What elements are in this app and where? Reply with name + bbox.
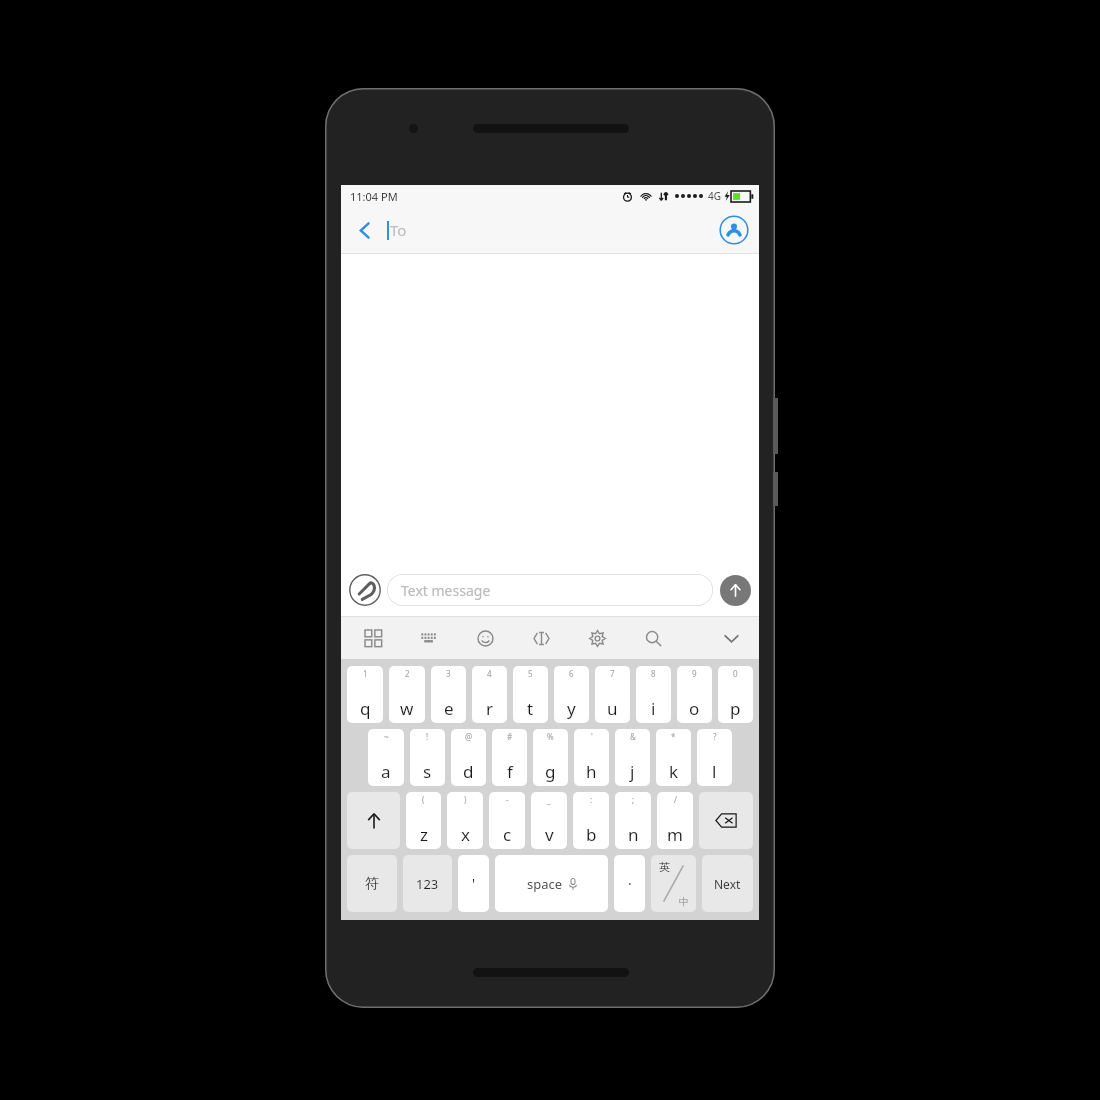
button[interactable]: Shift [347, 792, 400, 849]
button[interactable]: Search [639, 624, 667, 652]
button[interactable]: 2 [389, 666, 425, 723]
staticText: 1 [363, 668, 368, 679]
staticText: m [667, 823, 683, 846]
button[interactable]: Attach [349, 574, 381, 606]
button[interactable]: _ [531, 792, 567, 849]
staticText: 123 [416, 875, 439, 893]
staticText: 4G [708, 189, 721, 203]
button[interactable]: 7 [595, 666, 630, 723]
staticText: g [545, 760, 556, 783]
staticText: : [590, 794, 593, 805]
button[interactable]: 123 [403, 855, 452, 912]
staticText: o [689, 697, 700, 720]
button[interactable]: 6 [554, 666, 589, 723]
staticText: ) [464, 794, 467, 805]
button[interactable]: % [533, 729, 568, 786]
staticText: y [567, 697, 576, 720]
button[interactable]: 9 [677, 666, 712, 723]
button[interactable]: 3 [431, 666, 466, 723]
staticText: @ [465, 731, 473, 742]
staticText: 4 [487, 668, 492, 679]
staticText: q [360, 697, 371, 720]
button[interactable]: · [614, 855, 645, 912]
button[interactable]: ~ [368, 729, 404, 786]
button[interactable]: Next [702, 855, 753, 912]
button[interactable]: space [495, 855, 608, 912]
button[interactable]: 0 [718, 666, 753, 723]
staticText: 3 [446, 668, 451, 679]
button[interactable]: Keyboard layout [415, 624, 443, 652]
button[interactable]: ' [458, 855, 489, 912]
button[interactable]: ) [447, 792, 483, 849]
staticText: l [712, 760, 717, 783]
button[interactable]: & [615, 729, 650, 786]
staticText: space [527, 875, 563, 893]
staticText: ( [422, 794, 425, 805]
button[interactable]: ? [697, 729, 732, 786]
staticText: ' [591, 731, 593, 742]
staticText: 8 [651, 668, 656, 679]
button[interactable]: Settings [583, 624, 611, 652]
staticText: n [628, 823, 639, 846]
button[interactable]: * [656, 729, 691, 786]
button[interactable]: : [573, 792, 609, 849]
staticText: f [507, 760, 513, 783]
button[interactable]: Hide keyboard [717, 624, 745, 652]
staticText: - [506, 794, 509, 805]
staticText: 2 [405, 668, 410, 679]
staticText: z [420, 823, 428, 846]
button[interactable]: Backspace [699, 792, 753, 849]
staticText: w [400, 697, 414, 720]
button[interactable]: ! [410, 729, 445, 786]
staticText: d [463, 760, 474, 783]
button[interactable]: Apps [359, 624, 387, 652]
button[interactable]: 8 [636, 666, 671, 723]
button[interactable]: Send [720, 575, 751, 606]
button[interactable]: ( [406, 792, 441, 849]
staticText: ! [426, 731, 429, 742]
staticText: p [730, 697, 741, 720]
staticText: ~ [384, 731, 389, 742]
staticText: & [630, 731, 636, 742]
staticText: Text message [401, 581, 491, 600]
staticText: v [545, 823, 554, 846]
staticText: u [607, 697, 618, 720]
staticText: s [423, 760, 432, 783]
button[interactable]: Cursor control [527, 624, 555, 652]
button[interactable]: 1 [347, 666, 383, 723]
staticText: x [461, 823, 470, 846]
button[interactable]: - [489, 792, 525, 849]
staticText: Next [714, 876, 741, 892]
button[interactable]: Add contact [719, 215, 749, 245]
staticText: / [674, 794, 677, 805]
staticText: 7 [610, 668, 615, 679]
button[interactable]: ; [615, 792, 651, 849]
staticText: 英 [659, 860, 670, 874]
button[interactable]: 符 [347, 855, 397, 912]
staticText: r [486, 697, 494, 720]
button[interactable]: Back [349, 214, 381, 246]
staticText: To [390, 220, 407, 240]
staticText: ? [713, 731, 717, 742]
staticText: b [586, 823, 597, 846]
staticText: 9 [692, 668, 697, 679]
staticText: · [628, 874, 632, 893]
button[interactable]: Emoji [471, 624, 499, 652]
button[interactable]: / [657, 792, 693, 849]
button[interactable]: # [492, 729, 527, 786]
button[interactable]: 4 [472, 666, 507, 723]
button[interactable]: ' [574, 729, 609, 786]
staticText: 6 [569, 668, 574, 679]
staticText: 5 [528, 668, 533, 679]
staticText: 中 [679, 895, 689, 908]
button[interactable]: @ [451, 729, 486, 786]
button[interactable]: Switch language [651, 855, 696, 912]
staticText: # [507, 731, 513, 742]
staticText: i [651, 697, 656, 720]
button[interactable]: 5 [513, 666, 548, 723]
staticText: 11:04 PM [350, 189, 398, 204]
staticText: t [527, 697, 534, 720]
staticText: k [669, 760, 679, 783]
staticText: % [547, 731, 554, 742]
button[interactable]: Text message [387, 574, 713, 606]
